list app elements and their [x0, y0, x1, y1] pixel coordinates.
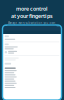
staticText: all from one simple dashboard.: [10, 25, 53, 28]
staticText: more control: [16, 5, 48, 12]
staticText: at your fingertips: [11, 12, 53, 19]
staticText: Manage every subscription you own,: [7, 21, 56, 25]
